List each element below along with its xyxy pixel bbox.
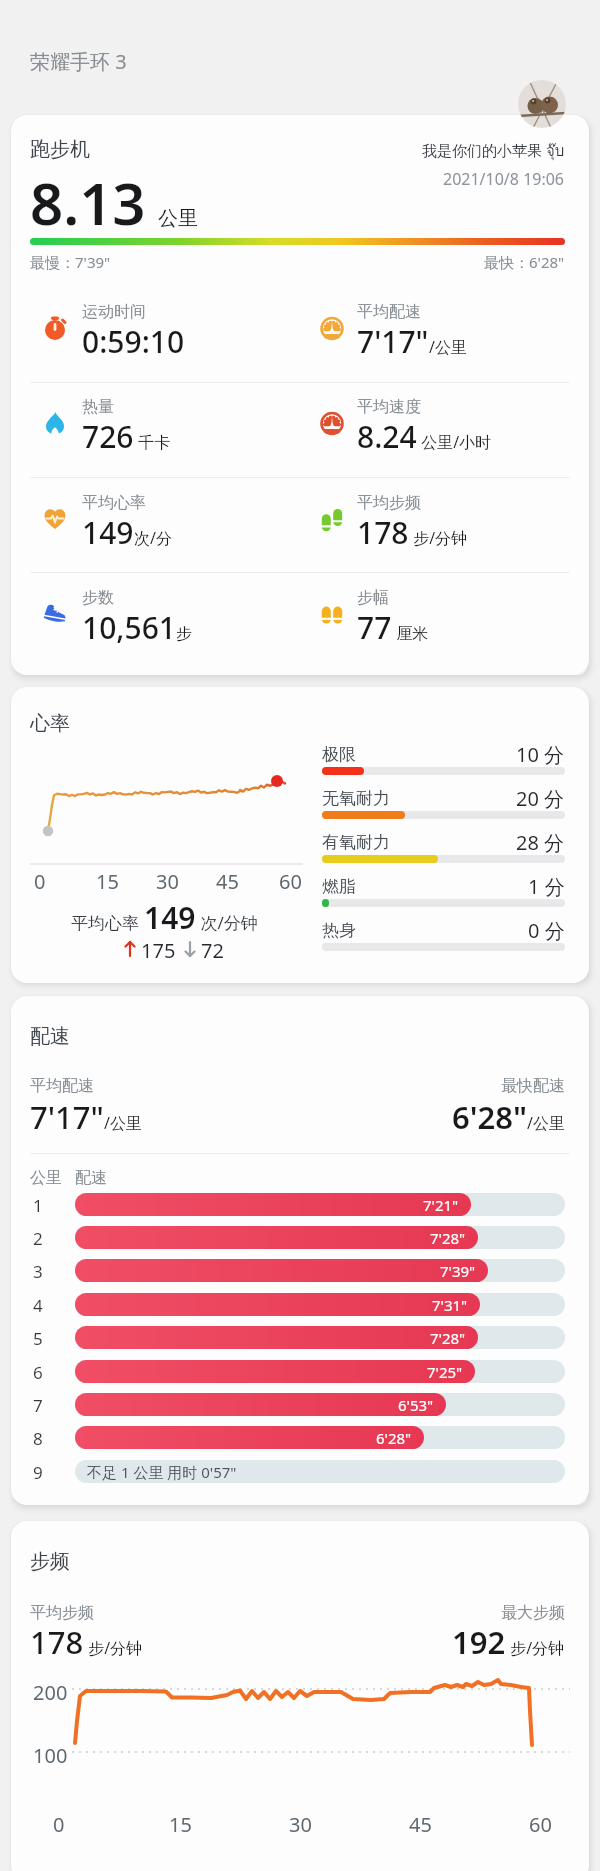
staticText: 6 (33, 1361, 43, 1384)
staticText: 15 (96, 868, 119, 895)
staticText: 平均速度 (357, 397, 421, 417)
staticText: 77 (357, 607, 392, 648)
staticText: 步数 (82, 588, 114, 608)
staticText: 149 (144, 897, 196, 938)
staticText: 步频 (30, 1549, 70, 1574)
staticText: /公里 (104, 1112, 142, 1134)
staticText: 心率 (30, 711, 70, 736)
button[interactable]: 步频 (11, 1521, 589, 1871)
staticText: 平均配速 (30, 1076, 94, 1096)
staticText: 7'17" (30, 1096, 104, 1138)
staticText: 最快配速 (501, 1076, 565, 1096)
staticText: 0 (53, 1811, 65, 1838)
staticText: 千卡 (134, 431, 171, 453)
staticText: 6'28" (452, 1096, 527, 1138)
staticText: 配速 (75, 1168, 107, 1188)
staticText: 我是你们的小苹果 จุ๊บ (422, 139, 565, 163)
staticText: 步幅 (357, 588, 389, 608)
staticText: 配速 (30, 1024, 70, 1049)
staticText: 最慢：7'39" (30, 252, 111, 272)
staticText: 7 (33, 1394, 43, 1417)
staticText: 6'53" (398, 1395, 434, 1415)
staticText: 步/分钟 (506, 1637, 565, 1659)
staticText: 3 (33, 1260, 43, 1283)
staticText: 15 (169, 1811, 192, 1838)
staticText: 7'21" (423, 1195, 459, 1215)
button[interactable]: 心率 (11, 687, 589, 983)
staticText: 公里/小时 (417, 431, 492, 453)
staticText: 无氧耐力 (322, 788, 390, 809)
button[interactable]: 跑步机 (11, 115, 589, 675)
staticText: 厘米 (392, 622, 429, 644)
staticText: 跑步机 (30, 137, 90, 162)
staticText: 10,561 (82, 607, 176, 648)
staticText: 次/分 (134, 527, 172, 549)
staticText: 20 分 (516, 785, 565, 812)
staticText: 178 (357, 512, 409, 553)
staticText: 4 (33, 1294, 43, 1317)
staticText: 步 (176, 624, 192, 644)
staticText: 1 分 (528, 873, 565, 900)
staticText: 100 (33, 1742, 68, 1769)
staticText: 726 (82, 416, 134, 457)
staticText: 8.13 (30, 163, 146, 242)
staticText: 平均步频 (357, 493, 421, 513)
staticText: 平均心率 (71, 911, 144, 934)
staticText: 公里 (158, 206, 198, 231)
staticText: 60 (529, 1811, 552, 1838)
staticText: 7'28" (430, 1228, 466, 1248)
staticText: 149 (82, 512, 134, 553)
staticText: 8.24 (357, 416, 417, 457)
staticText: 8 (33, 1427, 43, 1450)
staticText: 有氧耐力 (322, 832, 390, 853)
staticText: 7'17" (357, 321, 429, 362)
staticText: 最快：6'28" (484, 252, 565, 272)
staticText: /公里 (429, 336, 467, 358)
staticText: 0:59:10 (82, 321, 185, 362)
staticText: 45 (409, 1811, 432, 1838)
staticText: 30 (156, 868, 179, 895)
staticText: 步/分钟 (409, 527, 468, 549)
staticText: 燃脂 (322, 876, 356, 897)
staticText: 平均步频 (30, 1603, 94, 1623)
button[interactable] (518, 80, 566, 128)
staticText: 30 (289, 1811, 312, 1838)
staticText: 6'28" (376, 1428, 412, 1448)
button[interactable]: 配速 (11, 996, 589, 1505)
staticText: 0 分 (528, 917, 565, 944)
staticText: /公里 (527, 1112, 565, 1134)
staticText: 72 (201, 937, 224, 964)
staticText: 7'39" (440, 1261, 476, 1281)
staticText: 28 分 (516, 829, 565, 856)
staticText: 荣耀手环 3 (30, 48, 127, 75)
staticText: 9 (33, 1461, 43, 1484)
staticText: 不足 1 公里 用时 0'57" (87, 1462, 237, 1482)
staticText: 公里 (30, 1168, 62, 1188)
staticText: 平均配速 (357, 302, 421, 322)
staticText: 5 (33, 1327, 43, 1350)
staticText: 45 (216, 868, 239, 895)
staticText: 7'28" (430, 1328, 466, 1348)
staticText: 最大步频 (501, 1603, 565, 1623)
staticText: 次/分钟 (196, 911, 258, 934)
staticText: 热身 (322, 920, 356, 941)
staticText: 平均心率 (82, 493, 146, 513)
staticText: 热量 (82, 397, 114, 417)
staticText: 步/分钟 (84, 1637, 143, 1659)
staticText: 200 (33, 1679, 68, 1706)
staticText: 0 (34, 868, 46, 895)
staticText: 2021/10/8 19:06 (443, 168, 565, 190)
staticText: 7'25" (427, 1362, 463, 1382)
staticText: 10 分 (516, 741, 565, 768)
staticText: 192 (452, 1621, 506, 1663)
staticText: 7'31" (432, 1295, 468, 1315)
staticText: 2 (33, 1227, 43, 1250)
staticText: 极限 (322, 744, 356, 765)
staticText: 运动时间 (82, 302, 146, 322)
staticText: 1 (33, 1194, 43, 1217)
staticText: 175 (141, 937, 176, 964)
staticText: 178 (30, 1621, 84, 1663)
staticText: 60 (279, 868, 302, 895)
